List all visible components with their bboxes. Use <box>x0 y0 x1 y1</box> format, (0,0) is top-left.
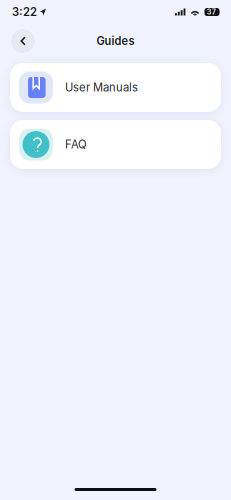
staticText: User Manuals <box>65 81 138 94</box>
button[interactable]: User Manuals <box>10 63 221 112</box>
staticText: FAQ <box>65 138 87 151</box>
staticText: 37 <box>207 8 216 16</box>
button[interactable]: FAQ <box>10 120 221 169</box>
staticText: Guides <box>96 34 134 48</box>
staticText: 3:22 <box>12 5 37 19</box>
button[interactable]: Back <box>11 29 35 53</box>
